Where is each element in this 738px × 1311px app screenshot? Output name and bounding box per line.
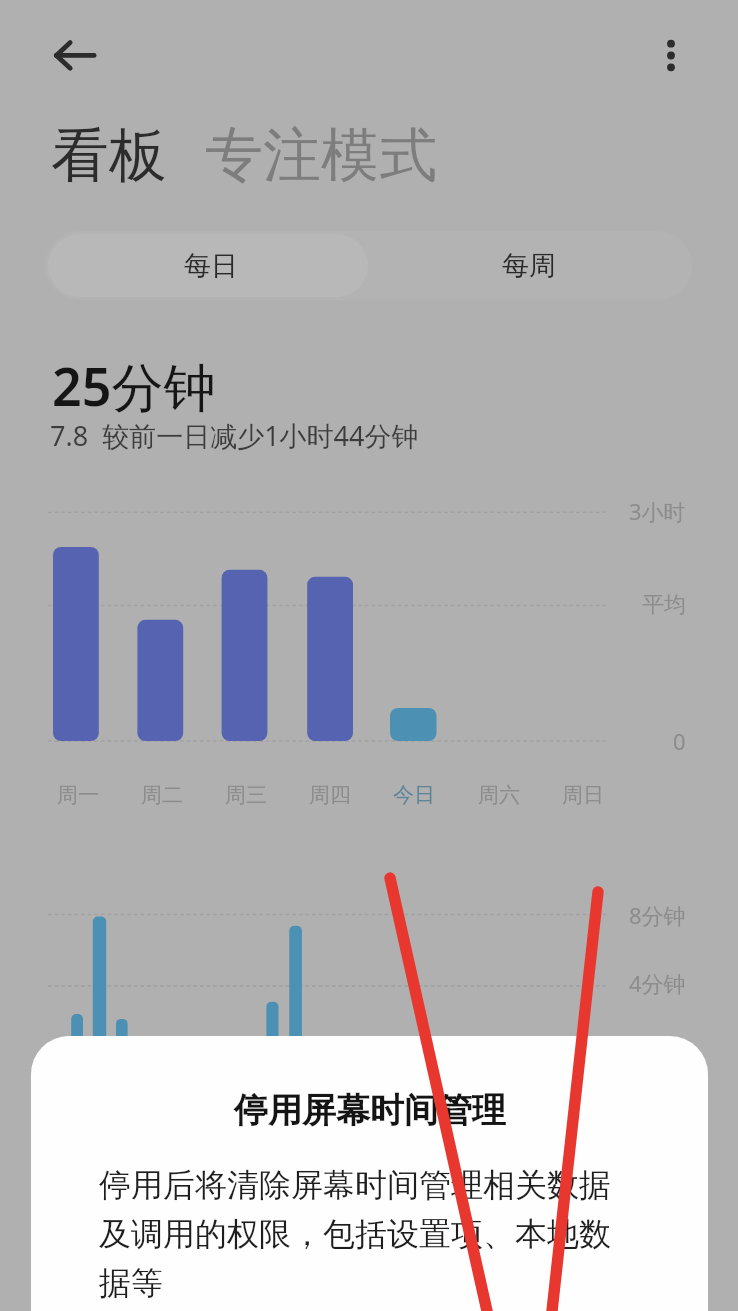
staticText: 今日 — [393, 782, 435, 808]
button[interactable]: 周六 — [459, 782, 539, 808]
button[interactable]: 周一 — [38, 782, 118, 808]
staticText: 周日 — [562, 782, 604, 808]
staticText: 停用屏幕时间管理 — [234, 1089, 506, 1132]
button[interactable]: Back — [33, 23, 97, 87]
button[interactable]: 周四 — [290, 782, 370, 808]
staticText: 3小时 — [629, 496, 686, 526]
staticText: 周六 — [478, 782, 520, 808]
button[interactable]: 周二 — [122, 782, 202, 808]
button[interactable]: 今日 — [374, 782, 454, 808]
staticText: 周二 — [141, 782, 183, 808]
button[interactable]: 周三 — [206, 782, 286, 808]
button[interactable]: 专注模式 — [205, 119, 437, 192]
staticText: 0 — [673, 726, 686, 756]
button[interactable]: More options — [642, 27, 699, 84]
staticText: 每周 — [502, 249, 556, 283]
button[interactable]: 每周 — [371, 231, 692, 300]
staticText: 周一 — [57, 782, 99, 808]
button[interactable]: 每日 — [48, 234, 368, 297]
staticText: 25分钟 — [52, 350, 216, 421]
staticText: 每日 — [184, 249, 238, 283]
staticText: 7.8 较前一日减少1小时44分钟 — [50, 417, 419, 454]
button[interactable]: 周日 — [543, 782, 623, 808]
staticText: 停用后将清除屏幕时间管理相关数据 及调用的权限，包括设置项、本地数 据等 — [99, 1165, 611, 1303]
staticText: 8分钟 — [629, 900, 686, 930]
staticText: 平均 — [642, 591, 686, 619]
staticText: 4分钟 — [629, 968, 686, 998]
staticText: 周四 — [309, 782, 351, 808]
button[interactable]: 看板 — [51, 119, 167, 192]
staticText: 周三 — [225, 782, 267, 808]
